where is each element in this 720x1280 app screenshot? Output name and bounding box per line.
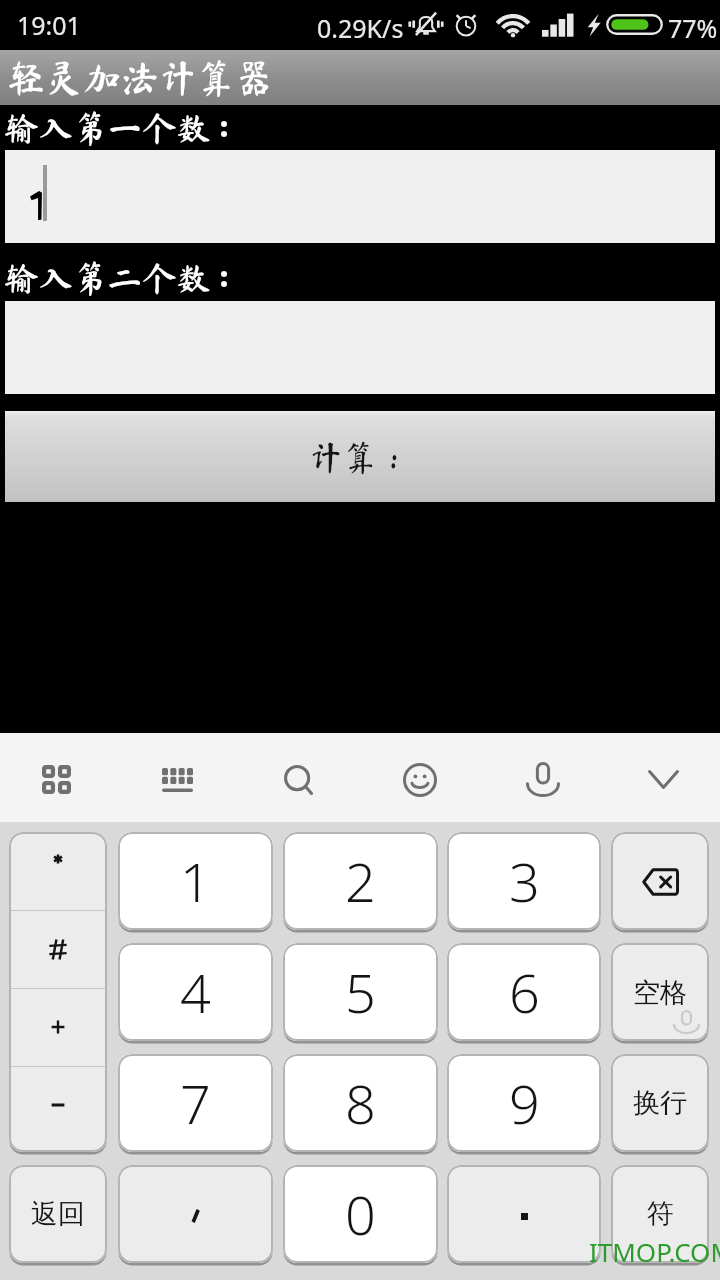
button[interactable]: Keyboard layouts [0,733,112,822]
button[interactable]: 0 [283,1165,438,1263]
staticText: 空格 [633,976,687,1010]
button[interactable] [5,150,715,243]
button[interactable]: Backspace [611,832,709,930]
button[interactable] [447,1165,601,1263]
staticText: 返回 [31,1197,85,1231]
button[interactable]: 1 [118,832,273,930]
button[interactable]: 4 [118,943,273,1041]
button[interactable] [118,1165,273,1263]
staticText: 0.29K/s [317,11,404,45]
button[interactable]: Emoji [364,733,476,822]
button[interactable]: 7 [118,1054,273,1152]
staticText: 符 [647,1197,674,1231]
button[interactable]: Minus [9,1067,107,1152]
button[interactable]: 5 [283,943,438,1041]
button[interactable]: Voice input [487,733,599,822]
staticText: 77% [668,11,718,45]
staticText: 计算： [309,440,411,474]
staticText: 7 [180,1066,211,1140]
staticText: 19:01 [17,8,81,42]
button[interactable]: Plus [9,989,107,1066]
staticText: 3 [509,844,540,918]
staticText: 轻灵加法计算器 [7,59,274,97]
button[interactable]: 3 [447,832,601,930]
button[interactable]: Switch keyboard [121,733,233,822]
button[interactable]: 符 [611,1165,709,1263]
staticText: 输入第二个数 [4,261,211,296]
button[interactable]: Asterisk [9,832,107,910]
staticText: 8 [345,1066,376,1140]
staticText: 2 [345,844,376,918]
button[interactable]: 2 [283,832,438,930]
staticText: 输入第一个数 [4,111,211,146]
button[interactable]: 计算： [5,411,715,502]
staticText: 1 [180,844,211,918]
button[interactable]: 9 [447,1054,601,1152]
staticText: 换行 [633,1086,687,1120]
staticText: ITMOP.COM [589,1234,720,1269]
staticText: 0 [345,1177,376,1251]
staticText: 6 [509,955,540,1029]
staticText: 5 [345,955,376,1029]
button[interactable]: Hide keyboard [607,733,719,822]
button[interactable]: Search [242,733,354,822]
button[interactable]: 6 [447,943,601,1041]
button[interactable]: 返回 [9,1165,107,1263]
button[interactable]: 8 [283,1054,438,1152]
button[interactable]: 换行 [611,1054,709,1152]
button[interactable]: Hash [9,911,107,988]
staticText: 4 [180,955,211,1029]
button[interactable]: 空格 [611,943,709,1041]
staticText: 9 [509,1066,540,1140]
